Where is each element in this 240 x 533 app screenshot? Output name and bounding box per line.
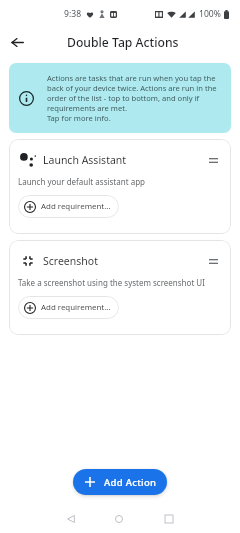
- button[interactable]: Screenshot: [9, 240, 231, 335]
- button[interactable]: Add requirement...: [18, 195, 119, 218]
- button[interactable]: Launch Assistant: [9, 139, 231, 234]
- staticText: Screenshot: [43, 254, 98, 268]
- staticText: Add Action: [104, 476, 157, 489]
- button[interactable]: Add requirement...: [18, 296, 119, 319]
- staticText: Add requirement...: [41, 302, 111, 313]
- button[interactable]: Add Action: [73, 469, 167, 495]
- staticText: Add requirement...: [41, 201, 111, 212]
- button[interactable]: Back: [3, 28, 31, 56]
- button[interactable]: Actions are tasks that are run when you …: [9, 63, 231, 133]
- staticText: 100%: [199, 8, 221, 20]
- staticText: Double Tap Actions: [67, 34, 179, 51]
- staticText: Take a screenshot using the system scree…: [18, 277, 205, 288]
- button[interactable]: Back: [59, 507, 83, 531]
- staticText: Actions are tasks that are run when you …: [47, 73, 225, 123]
- staticText: Launch your default assistant app: [18, 176, 145, 187]
- button[interactable]: Reorder: [204, 252, 222, 270]
- staticText: Launch Assistant: [43, 153, 127, 167]
- button[interactable]: Reorder: [204, 151, 222, 169]
- button[interactable]: Recents: [157, 507, 181, 531]
- staticText: 9:38: [64, 8, 82, 20]
- button[interactable]: Home: [107, 507, 131, 531]
